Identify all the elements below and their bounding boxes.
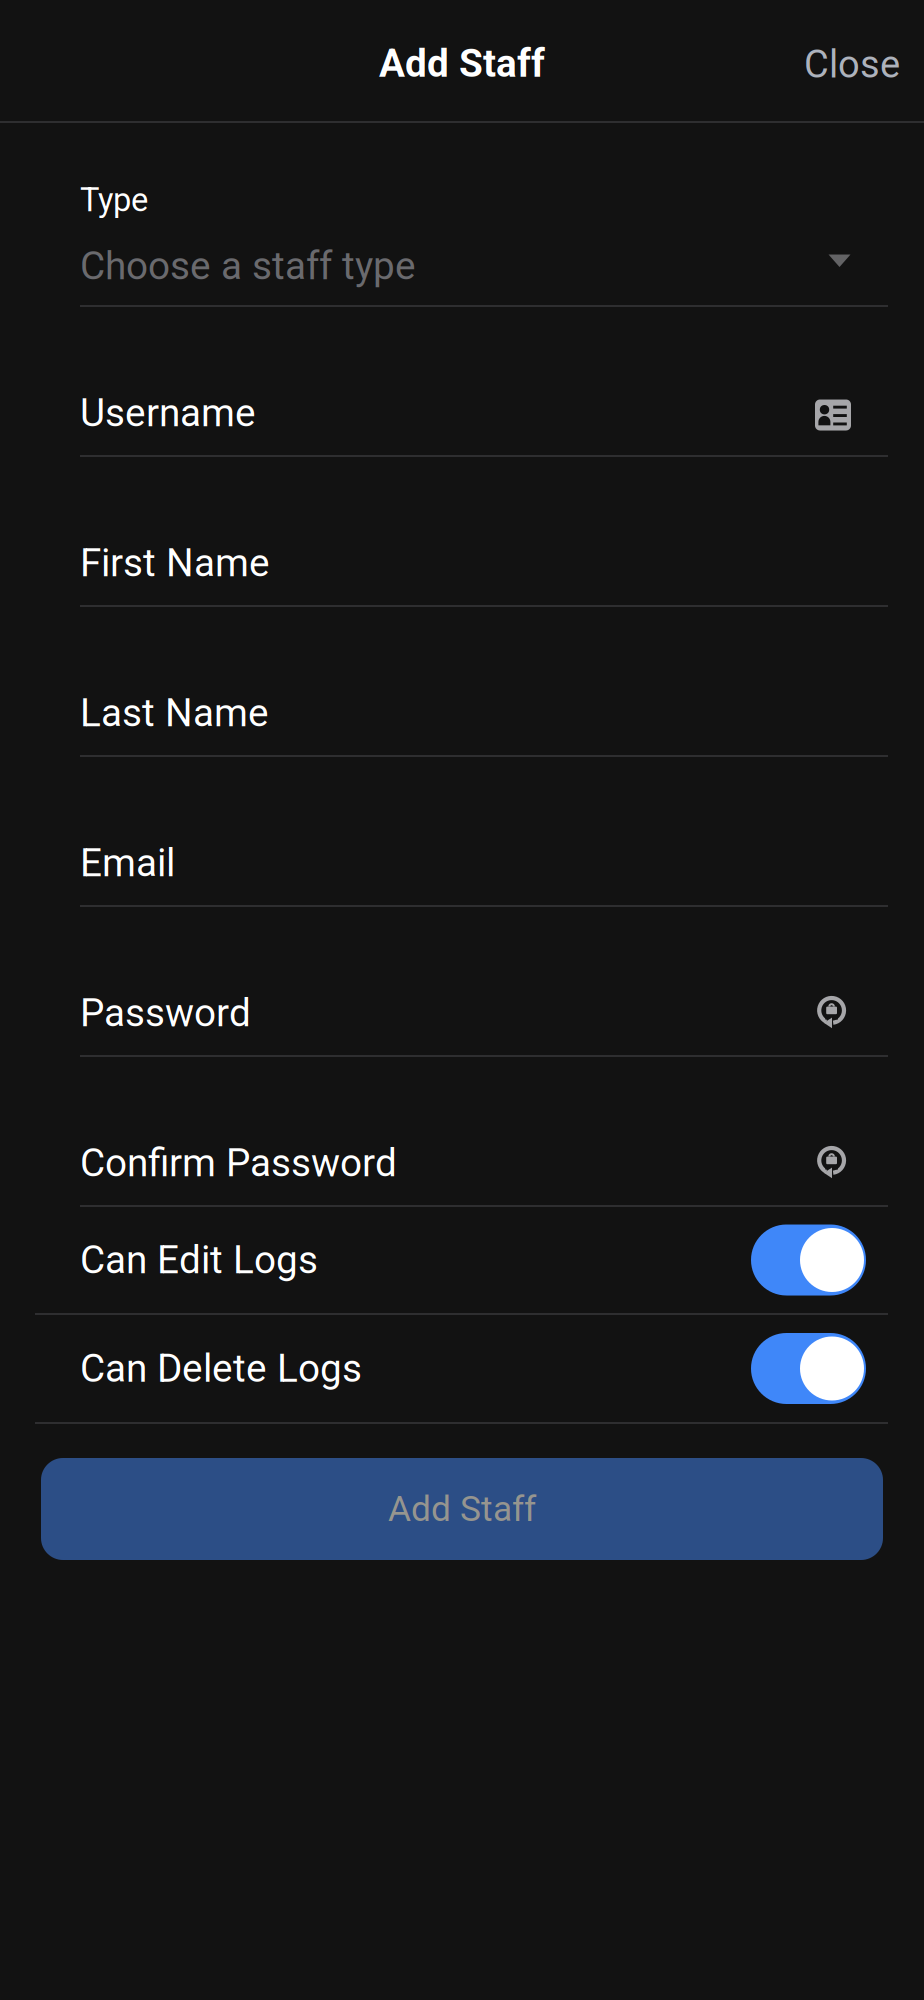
button[interactable]: Can Delete Logs xyxy=(0,1315,924,1422)
button[interactable]: Type xyxy=(0,123,924,305)
button[interactable]: Email xyxy=(0,757,924,905)
staticText: Choose a staff type xyxy=(80,243,416,289)
staticText: Last Name xyxy=(80,690,269,736)
staticText: Type xyxy=(80,181,148,219)
staticText: Password xyxy=(80,990,251,1036)
button[interactable]: Password xyxy=(0,907,924,1055)
staticText: Can Delete Logs xyxy=(80,1346,362,1391)
button[interactable]: Close xyxy=(774,22,924,107)
staticText: Add Staff xyxy=(388,1488,536,1530)
staticText: First Name xyxy=(80,540,270,586)
staticText: Username xyxy=(80,390,256,436)
button[interactable]: Confirm Password xyxy=(0,1057,924,1205)
button[interactable]: Add Staff xyxy=(41,1458,883,1560)
button[interactable]: Username xyxy=(0,307,924,455)
button[interactable]: Last Name xyxy=(0,607,924,755)
staticText: Close xyxy=(804,42,900,87)
staticText: Confirm Password xyxy=(80,1140,397,1186)
staticText: Can Edit Logs xyxy=(80,1237,318,1283)
staticText: Add Staff xyxy=(379,41,545,86)
button[interactable]: First Name xyxy=(0,457,924,605)
staticText: Email xyxy=(80,840,175,886)
button[interactable]: Can Edit Logs xyxy=(0,1207,924,1313)
